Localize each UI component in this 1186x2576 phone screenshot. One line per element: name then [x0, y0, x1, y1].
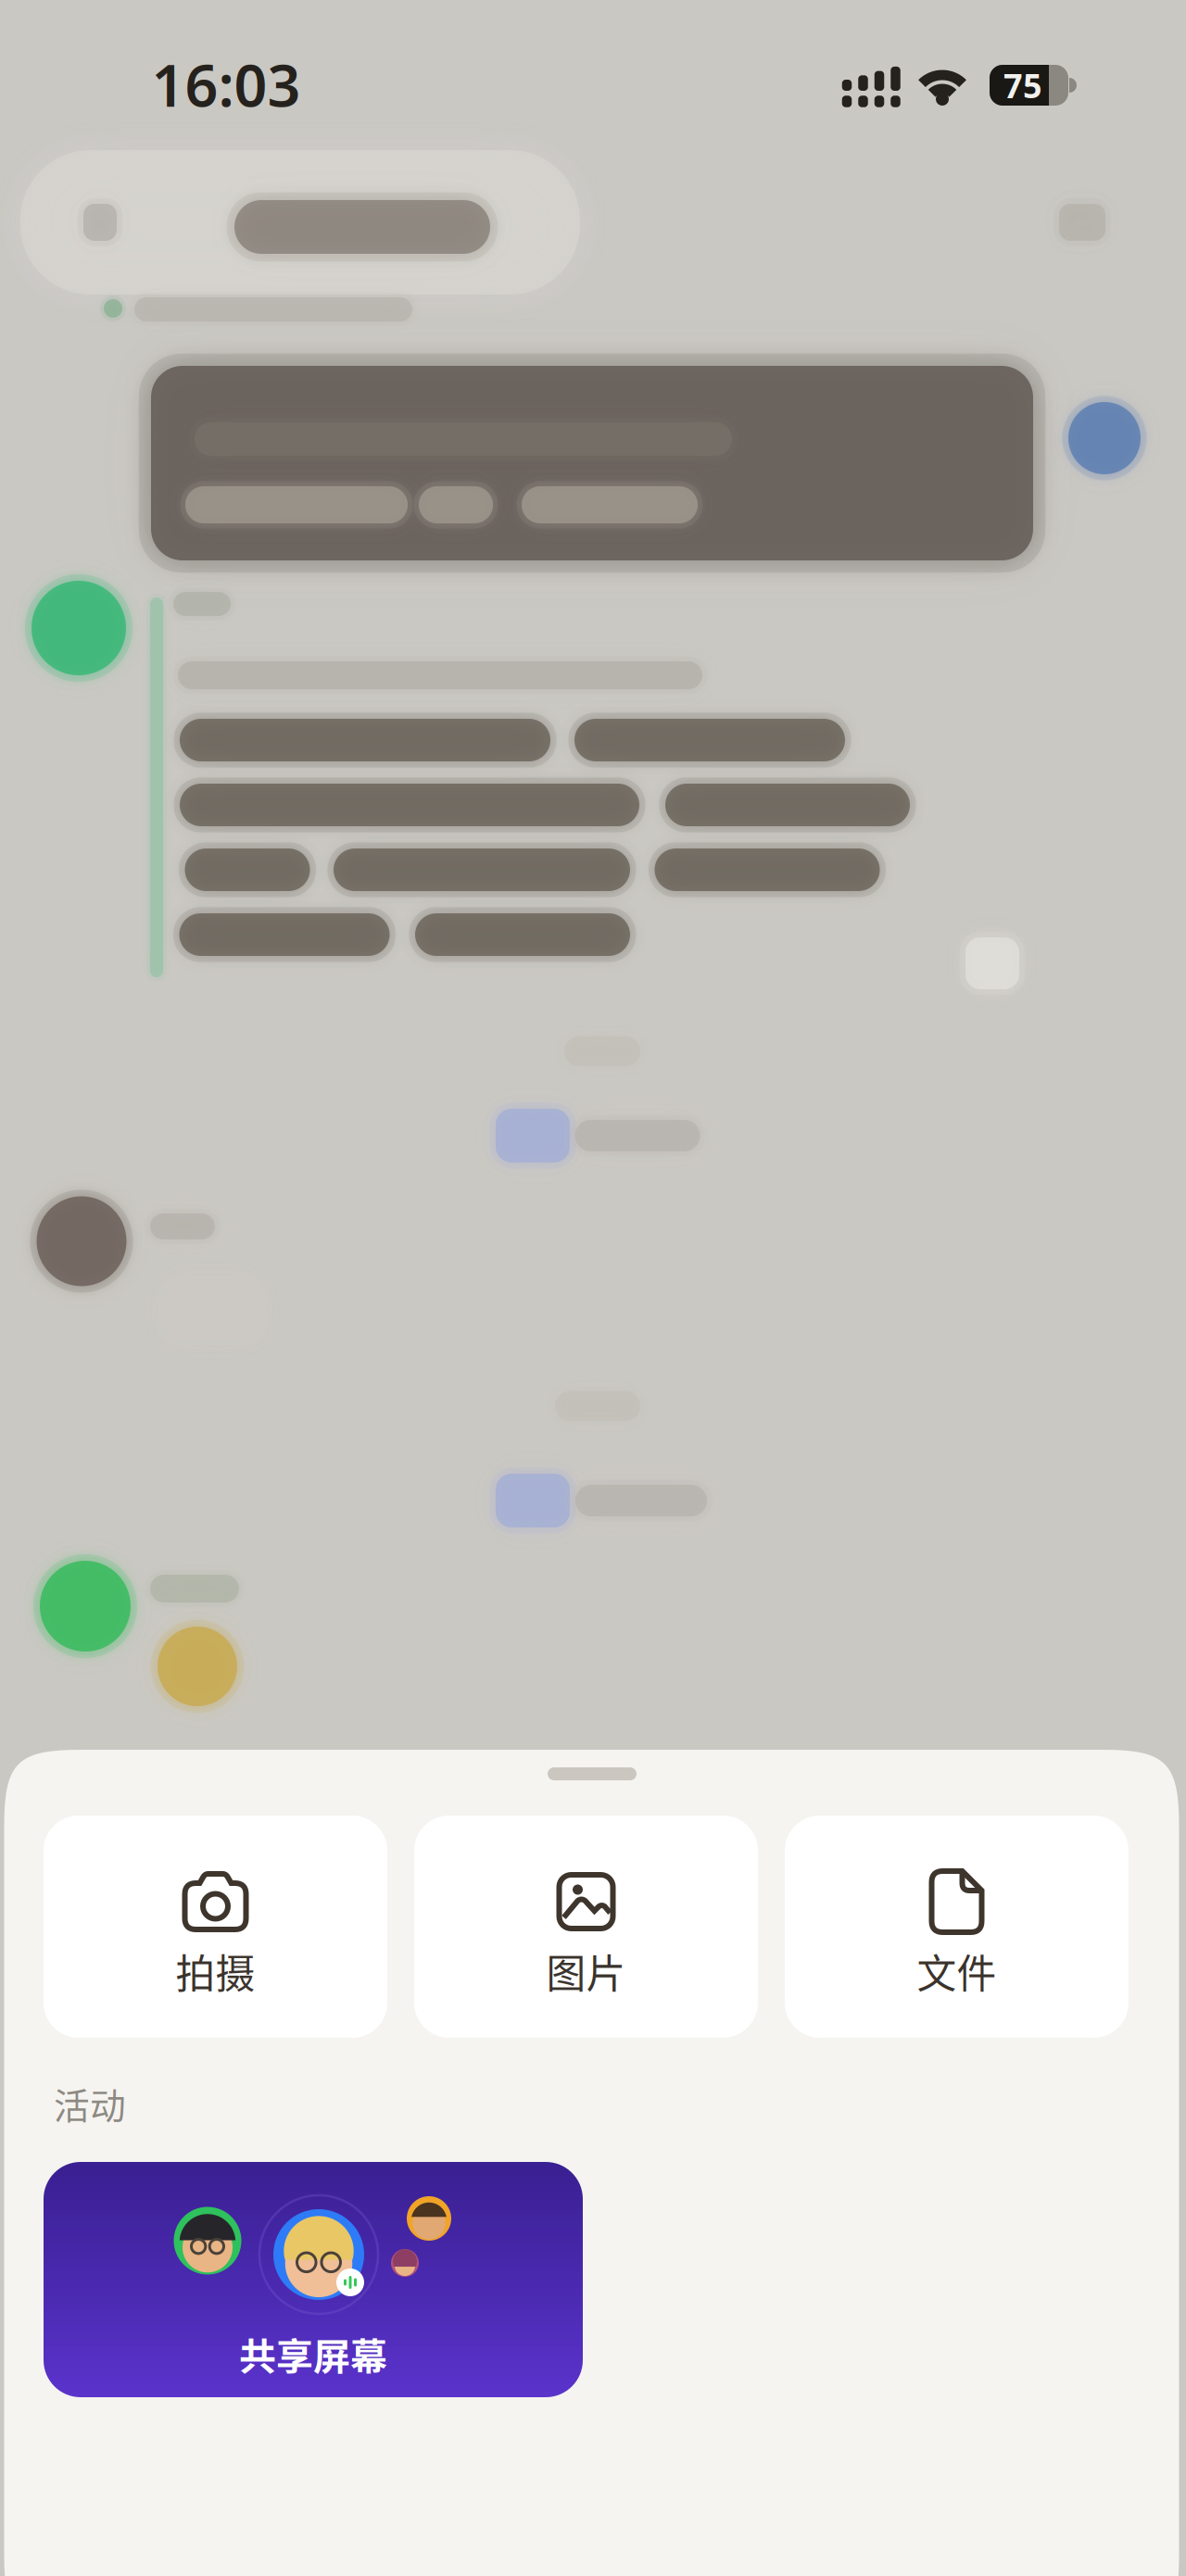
- staticText: 活动: [54, 2078, 126, 2130]
- button[interactable]: Dismiss: [548, 1767, 637, 1780]
- staticText: 拍摄: [176, 1943, 255, 2000]
- staticText: 75: [1003, 63, 1042, 108]
- staticText: 图片: [546, 1943, 626, 2000]
- button[interactable]: 共享屏幕: [44, 2162, 583, 2397]
- staticText: 文件: [917, 1943, 997, 2000]
- staticText: 共享屏幕: [239, 2327, 387, 2380]
- button[interactable]: 文件: [785, 1816, 1129, 2038]
- button[interactable]: 图片: [414, 1816, 758, 2038]
- button[interactable]: 拍摄: [44, 1816, 387, 2038]
- staticText: 16:03: [151, 45, 301, 124]
